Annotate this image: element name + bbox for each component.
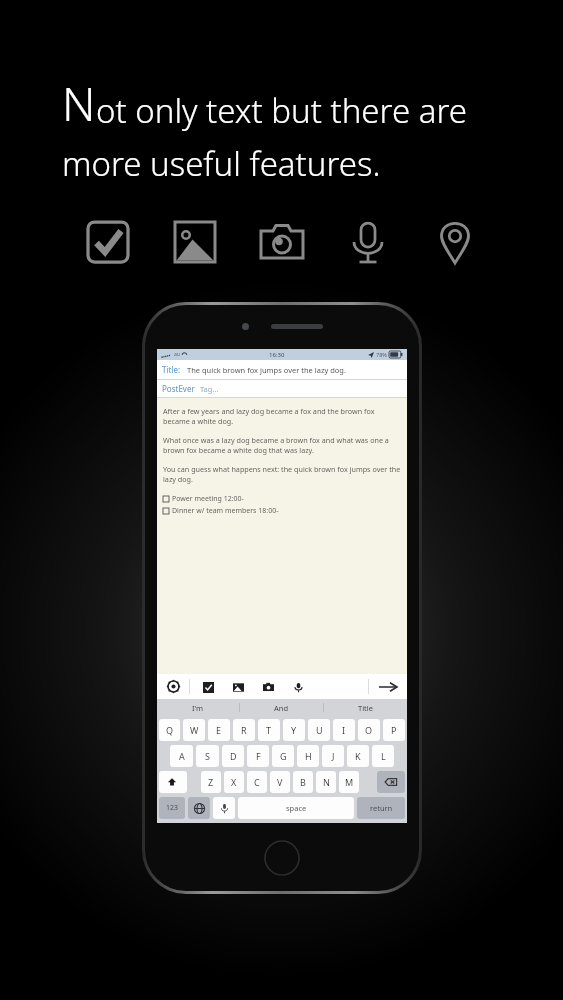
button[interactable]: Camera [259,678,277,696]
button[interactable]: Dictate [213,797,235,819]
staticText: N [62,72,96,135]
button[interactable]: I'm [157,699,239,716]
button[interactable]: 123 [159,797,185,819]
button[interactable]: V [270,771,290,793]
button[interactable]: B [293,771,313,793]
button[interactable]: W [183,719,205,741]
staticText: V [277,776,283,788]
staticText: au [174,351,180,358]
button[interactable]: J [322,745,344,767]
staticText: J [332,750,335,762]
button[interactable]: E [208,719,230,741]
staticText: A [179,750,185,762]
staticText: N [323,776,330,788]
staticText: X [231,776,237,788]
button[interactable]: Home [263,839,301,877]
staticText: more useful features. [62,141,381,186]
button[interactable]: X [224,771,244,793]
button[interactable]: Shift [159,771,187,793]
button[interactable]: Emoji [188,797,210,819]
button[interactable]: Backspace [377,771,405,793]
button[interactable]: Photo [167,214,223,270]
staticText: I [342,724,346,736]
button[interactable]: Dinner w/ team members 18:00- [163,506,401,516]
staticText: S [205,750,210,762]
button[interactable]: A [170,745,193,767]
button[interactable]: H [297,745,319,767]
staticText: R [241,724,247,736]
button[interactable]: Power meeting 12:00- [163,494,401,504]
button[interactable]: K [347,745,369,767]
staticText: Dinner w/ team members 18:00- [172,506,279,516]
button[interactable]: Location [427,214,483,270]
staticText: K [355,750,361,762]
staticText: Q [166,724,174,736]
staticText: Y [291,724,297,736]
button[interactable]: space [238,797,354,819]
staticText: 123 [166,803,179,813]
staticText: U [316,724,323,736]
button[interactable]: N [316,771,336,793]
staticText: O [365,724,373,736]
button[interactable]: S [196,745,219,767]
staticText: T [266,724,272,736]
button[interactable]: Title: [157,360,407,379]
staticText: C [254,776,260,788]
button[interactable]: Checklist [199,678,217,696]
button[interactable]: Voice [340,214,396,270]
staticText: M [345,776,354,788]
staticText: ot only text but there are [96,88,467,133]
button[interactable]: M [339,771,359,793]
staticText: Tag... [200,384,219,394]
staticText: space [286,803,307,813]
button[interactable]: I [333,719,355,741]
button[interactable]: Camera [254,214,310,270]
staticText: P [391,724,397,736]
button[interactable]: P [383,719,405,741]
staticText: W [190,724,199,736]
staticText: F [256,750,261,762]
button[interactable]: Q [159,719,180,741]
button[interactable]: O [358,719,380,741]
staticText: After a few years and lazy dog became a … [163,406,401,426]
staticText: The quick brown fox jumps over the lazy … [187,365,346,375]
staticText: H [305,750,312,762]
staticText: G [280,750,287,762]
button[interactable]: Send [369,674,407,699]
staticText: 78% [376,351,387,358]
button[interactable]: U [308,719,330,741]
staticText: L [381,750,386,762]
staticText: return [370,803,393,813]
staticText: Title: [162,364,181,375]
staticText: Z [208,776,214,788]
staticText: B [300,776,306,788]
button[interactable]: G [272,745,294,767]
staticText: Power meeting 12:00- [172,494,244,504]
button[interactable]: Settings [157,674,189,699]
staticText: 16:30 [269,351,285,359]
staticText: PostEver [162,383,195,394]
button[interactable]: And [240,699,323,716]
button[interactable]: Y [283,719,305,741]
staticText: What once was a lazy dog became a brown … [163,435,401,455]
button[interactable]: Voice [289,678,307,696]
button[interactable]: T [258,719,280,741]
button[interactable]: C [247,771,267,793]
button[interactable]: Z [201,771,221,793]
staticText: E [216,724,222,736]
button[interactable]: PostEver [157,380,407,397]
button[interactable]: D [222,745,244,767]
staticText: I'm [192,703,204,713]
button[interactable]: Title [324,699,407,716]
button[interactable]: Photo [229,678,247,696]
button[interactable]: return [357,797,405,819]
staticText: Title [358,703,373,713]
staticText: You can guess what happens next: the qui… [163,464,401,484]
staticText: D [230,750,237,762]
button[interactable]: R [233,719,255,741]
button[interactable]: Checklist [80,214,136,270]
button[interactable]: L [372,745,394,767]
staticText: And [274,703,289,713]
button[interactable]: F [247,745,269,767]
